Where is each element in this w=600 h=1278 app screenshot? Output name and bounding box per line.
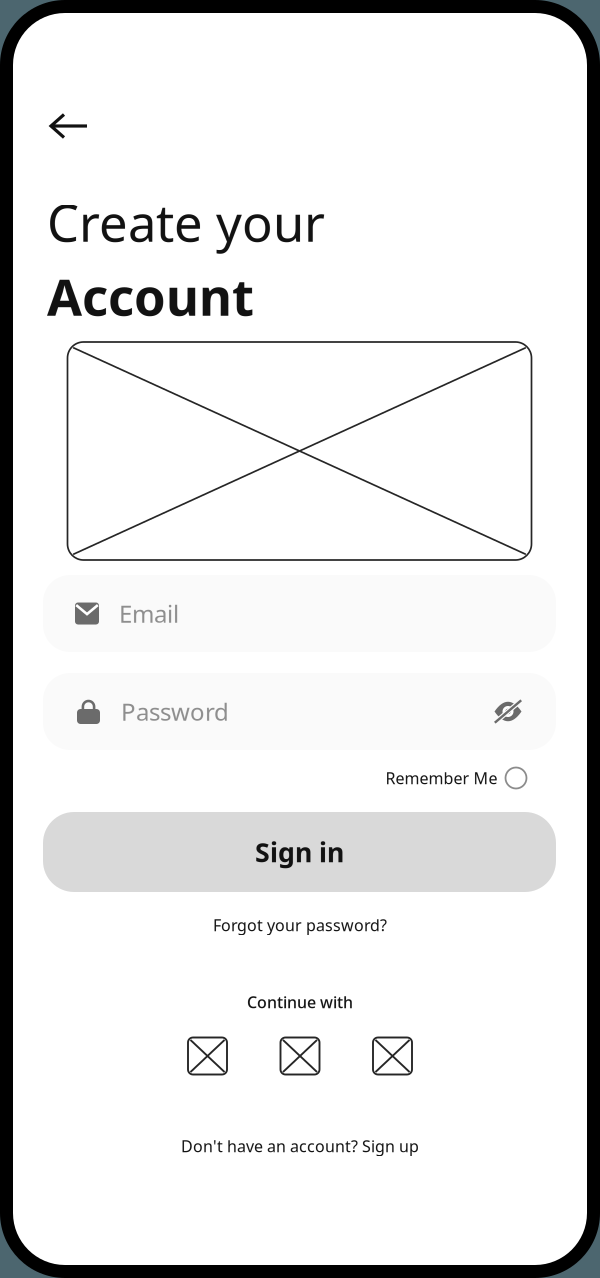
staticText: Account bbox=[47, 262, 254, 330]
button[interactable]: Password bbox=[43, 673, 556, 750]
button[interactable]: Don't have an account? Sign up bbox=[181, 1129, 419, 1163]
staticText: Email bbox=[119, 598, 179, 629]
button[interactable]: Sign in bbox=[43, 812, 556, 892]
button[interactable]: Remember Me bbox=[385, 761, 526, 795]
button[interactable]: Continue with Facebook bbox=[369, 1033, 415, 1079]
staticText: Create your bbox=[47, 188, 325, 256]
button[interactable]: Forgot your password? bbox=[213, 908, 387, 942]
staticText: Forgot your password? bbox=[213, 914, 387, 936]
button[interactable]: Email bbox=[43, 575, 556, 652]
button[interactable]: Back bbox=[32, 94, 106, 158]
staticText: Don't have an account? Sign up bbox=[181, 1135, 419, 1157]
button[interactable]: Continue with Apple bbox=[277, 1033, 323, 1079]
staticText: Sign in bbox=[255, 834, 344, 870]
staticText: Remember Me bbox=[385, 767, 497, 789]
staticText: Password bbox=[121, 696, 229, 727]
staticText: Continue with bbox=[247, 991, 353, 1013]
button[interactable]: Continue with Google bbox=[184, 1033, 230, 1079]
